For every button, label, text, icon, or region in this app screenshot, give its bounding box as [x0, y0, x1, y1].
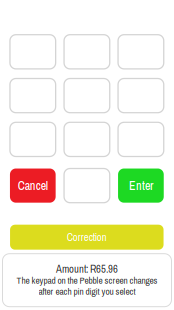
button[interactable]: Keypad key: [64, 35, 110, 69]
button[interactable]: Keypad key: [64, 168, 110, 203]
button[interactable]: Keypad key: [118, 78, 164, 113]
staticText: Amount: R65.96: [56, 262, 118, 276]
button[interactable]: Keypad key: [64, 78, 110, 113]
staticText: Enter: [129, 177, 153, 194]
button[interactable]: Keypad key: [10, 122, 56, 156]
staticText: Cancel: [18, 177, 48, 194]
button[interactable]: Cancel: [10, 168, 56, 203]
staticText: Correction: [67, 230, 107, 244]
staticText: after each pin digit you select: [38, 285, 135, 298]
button[interactable]: Keypad key: [10, 78, 56, 113]
button[interactable]: Keypad key: [10, 35, 56, 69]
button[interactable]: Keypad key: [118, 122, 164, 156]
staticText: The keypad on the Pebble screen changes: [16, 274, 157, 287]
button[interactable]: Keypad key: [64, 122, 110, 156]
button[interactable]: Correction: [10, 225, 163, 250]
button[interactable]: Enter: [118, 168, 164, 203]
button[interactable]: Keypad key: [118, 35, 164, 69]
